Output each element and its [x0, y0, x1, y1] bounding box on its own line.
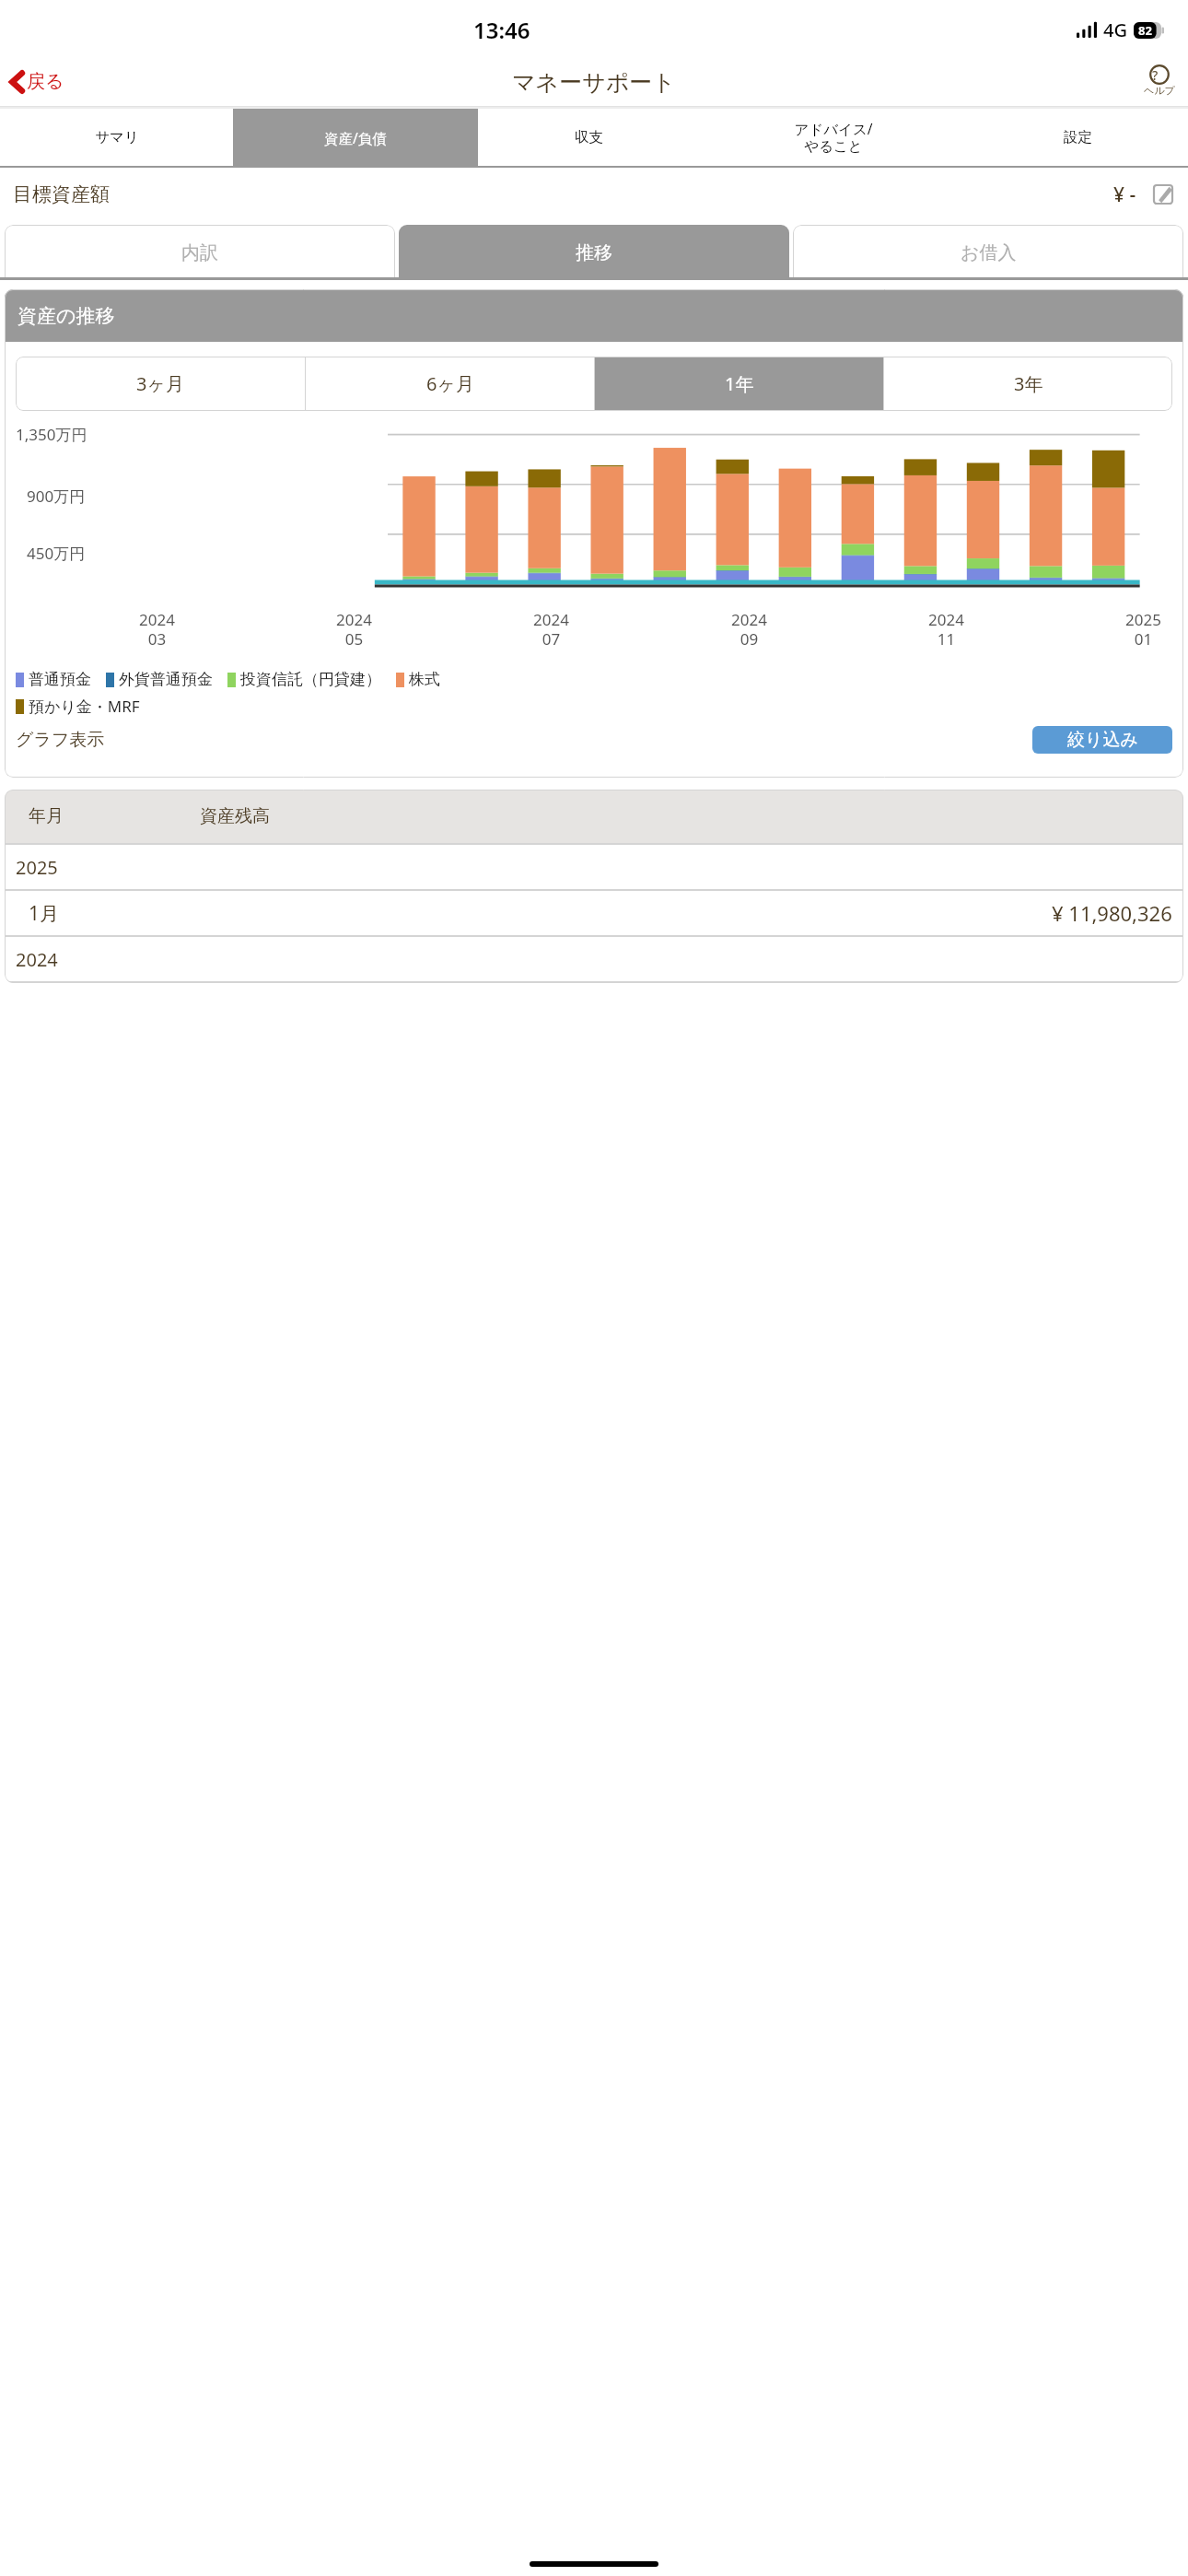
staticText: 1年	[725, 371, 754, 396]
staticText: 4G	[1103, 18, 1127, 42]
button[interactable]: 設定	[967, 109, 1188, 166]
staticText: 13:46	[473, 15, 530, 45]
button[interactable]: アドバイス/ やること	[699, 109, 967, 166]
staticText: 2024 03	[139, 609, 175, 650]
staticText: 450万円	[27, 543, 86, 564]
staticText: 収支	[575, 128, 603, 146]
staticText: 資産の推移	[17, 304, 115, 328]
staticText: 2024	[16, 947, 58, 972]
button[interactable]: 3年	[884, 357, 1172, 411]
staticText: マネーサポート	[512, 68, 676, 97]
staticText: 投資信託（円貸建）	[240, 670, 381, 689]
staticText: アドバイス/ やること	[794, 119, 873, 156]
staticText: 年月	[29, 805, 64, 827]
button[interactable]: ヘルプ	[1131, 64, 1188, 98]
staticText: 82	[1138, 22, 1152, 39]
staticText: 2024 05	[336, 609, 372, 650]
staticText: 預かり金・MRF	[29, 696, 140, 717]
staticText: 3ヶ月	[136, 371, 184, 396]
button[interactable]: 6ヶ月	[306, 357, 594, 411]
staticText: 6ヶ月	[426, 371, 474, 396]
staticText: 株式	[409, 670, 440, 689]
button[interactable]: 内訳	[5, 225, 395, 280]
staticText: 2024 11	[928, 609, 964, 650]
staticText: 1,350万円	[16, 424, 87, 445]
staticText: 2025	[16, 855, 58, 880]
staticText: 目標資産額	[13, 182, 110, 206]
button[interactable]: 収支	[478, 109, 699, 166]
button[interactable]: 2024	[5, 937, 1183, 981]
staticText: グラフ表示	[16, 729, 105, 751]
staticText: 普通預金	[29, 670, 91, 689]
staticText: 戻る	[27, 70, 64, 93]
staticText: 推移	[576, 241, 612, 264]
staticText: 内訳	[181, 241, 218, 264]
button[interactable]: 戻る	[0, 64, 76, 99]
staticText: 設定	[1064, 128, 1092, 146]
staticText: 2024 09	[731, 609, 767, 650]
staticText: 1月	[29, 900, 60, 927]
staticText: 絞り込み	[1067, 729, 1138, 751]
button[interactable]: 1月	[5, 891, 1183, 935]
staticText: 2024 07	[533, 609, 569, 650]
staticText: ヘルプ	[1144, 84, 1175, 97]
button[interactable]: 2025	[5, 845, 1183, 889]
staticText: 外貨普通預金	[119, 670, 213, 689]
button[interactable]: 編集	[1149, 181, 1177, 208]
button[interactable]: 推移	[399, 225, 789, 280]
button[interactable]: サマリ	[0, 109, 233, 166]
staticText: お借入	[961, 241, 1017, 264]
staticText: 2025 01	[1125, 609, 1161, 650]
staticText: 資産残高	[200, 805, 270, 827]
staticText: 900万円	[27, 486, 86, 507]
staticText: ?	[1152, 66, 1159, 84]
button[interactable]: 資産/負債	[233, 109, 478, 166]
button[interactable]: 3ヶ月	[16, 357, 305, 411]
staticText: ¥ 11,980,326	[1052, 899, 1172, 927]
button[interactable]: お借入	[793, 225, 1183, 280]
staticText: 3年	[1014, 371, 1043, 396]
staticText: 資産/負債	[324, 128, 387, 147]
staticText: ¥ -	[1113, 181, 1136, 208]
staticText: サマリ	[95, 128, 139, 146]
button[interactable]: 1年	[595, 357, 883, 411]
button[interactable]: 絞り込み	[1032, 726, 1172, 754]
